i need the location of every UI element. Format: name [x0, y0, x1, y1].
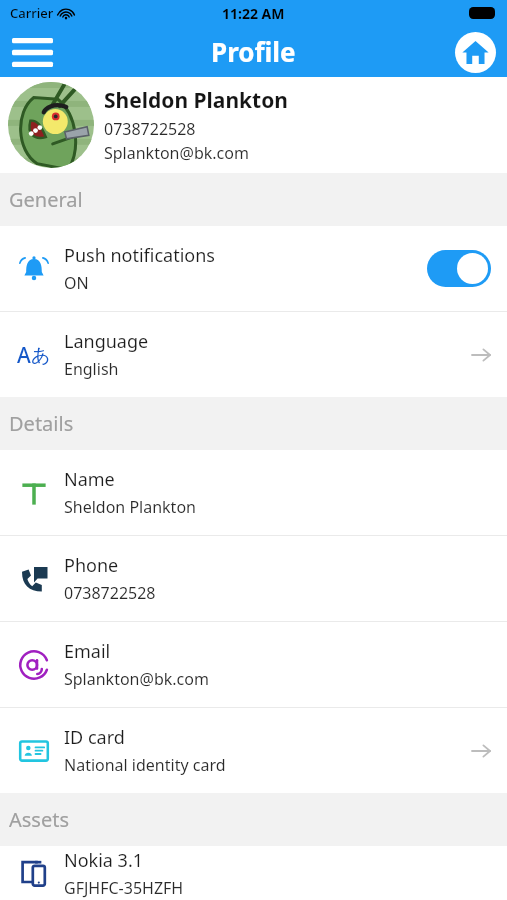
button[interactable]: Push notifications	[0, 226, 507, 311]
staticText: Phone	[64, 553, 119, 578]
button[interactable]: A	[0, 312, 507, 397]
staticText: 0738722528	[104, 118, 196, 140]
staticText: Nokia 3.1	[64, 848, 144, 873]
staticText: Sheldon Plankton	[64, 496, 196, 518]
staticText: Language	[64, 329, 149, 354]
staticText: Assets	[9, 806, 70, 833]
button[interactable]: ID card	[0, 708, 507, 793]
staticText: Carrier	[10, 4, 54, 22]
staticText: Details	[9, 410, 74, 437]
staticText: Profile	[211, 34, 296, 69]
staticText: ON	[64, 272, 89, 294]
staticText: Splankton@bk.com	[104, 142, 249, 164]
staticText: National identity card	[64, 754, 226, 776]
staticText: 11:22 AM	[222, 4, 285, 23]
staticText: Name	[64, 467, 115, 492]
staticText: あ	[31, 344, 51, 368]
staticText: English	[64, 358, 119, 380]
staticText: GFJHFC-35HZFH	[64, 877, 184, 899]
button[interactable]: Name	[0, 450, 507, 535]
button[interactable]: Menu	[6, 30, 58, 74]
button[interactable]: Home	[451, 28, 499, 76]
button[interactable]: Phone	[0, 536, 507, 621]
staticText: General	[9, 186, 83, 213]
staticText: Splankton@bk.com	[64, 668, 209, 690]
staticText: 0738722528	[64, 582, 156, 604]
button[interactable]: Push notifications toggle	[427, 250, 491, 287]
button[interactable]: Nokia 3.1	[0, 846, 507, 900]
staticText: A	[17, 341, 31, 370]
staticText: Email	[64, 639, 111, 664]
staticText: ID card	[64, 725, 125, 750]
staticText: Sheldon Plankton	[104, 86, 288, 115]
button[interactable]: Email	[0, 622, 507, 707]
staticText: Push notifications	[64, 243, 215, 268]
button[interactable]: Sheldon Plankton	[0, 77, 507, 173]
